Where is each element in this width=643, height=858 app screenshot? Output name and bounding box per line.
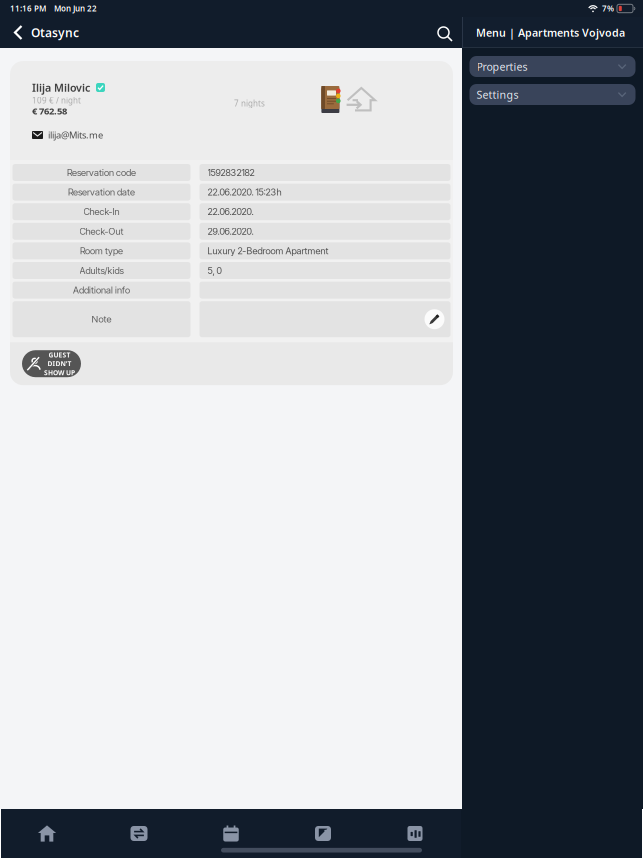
staticText: Otasync (31, 24, 79, 40)
staticText: 7 nights (234, 98, 265, 109)
staticText: 11:16 PM (10, 3, 46, 14)
staticText: Properties (476, 59, 527, 74)
staticText: DIDN'T (47, 359, 71, 368)
button[interactable]: Sync (93, 809, 185, 858)
staticText: ilija@Mits.me (48, 129, 103, 141)
staticText: Room type (80, 245, 123, 257)
button[interactable]: Home (1, 809, 93, 858)
button[interactable]: Settings (469, 84, 635, 105)
staticText: Menu | Apartments Vojvoda (476, 25, 625, 40)
button[interactable]: Edit note (424, 309, 444, 329)
staticText: Reservation date (68, 186, 135, 198)
staticText: 29.06.2020. (207, 226, 253, 237)
staticText: Check-Out (79, 226, 123, 237)
staticText: GUEST (48, 350, 70, 359)
staticText: Note (91, 314, 111, 325)
button[interactable]: GUEST (22, 350, 81, 377)
staticText: 1592832182 (207, 167, 254, 178)
staticText: Check-In (83, 206, 119, 217)
staticText: SHOW UP (44, 368, 75, 377)
staticText: Luxury 2-Bedroom Apartment (207, 245, 328, 257)
staticText: 109 € / night (32, 95, 81, 106)
staticText: Ilija Milovic (32, 80, 90, 95)
staticText: Mon Jun 22 (54, 3, 97, 14)
staticText: 7% (602, 3, 614, 14)
button[interactable]: Properties (469, 56, 635, 77)
staticText: € 762.58 (32, 105, 67, 117)
staticText: Settings (476, 87, 518, 102)
staticText: 22.06.2020. (207, 206, 253, 217)
staticText: Adults/kids (79, 265, 123, 276)
button[interactable]: Reports (369, 809, 461, 858)
staticText: Reservation code (67, 167, 136, 178)
staticText: 5, 0 (207, 265, 221, 276)
button[interactable]: Rates (277, 809, 369, 858)
button[interactable]: Calendar (185, 809, 277, 858)
staticText: 22.06.2020. 15:23h (207, 186, 281, 198)
button[interactable]: Search (437, 17, 462, 48)
staticText: Additional info (73, 284, 130, 296)
button[interactable]: Otasync (0, 17, 89, 48)
